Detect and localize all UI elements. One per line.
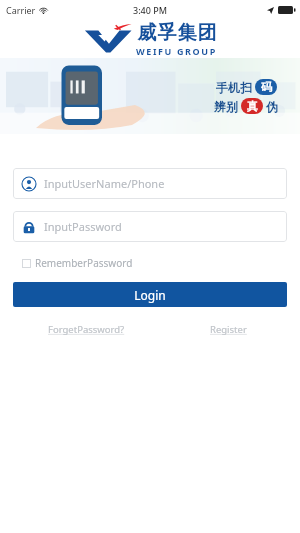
button[interactable]: Register [208,321,249,338]
staticText: 真 [247,99,258,113]
button[interactable]: Login [13,282,287,307]
staticText: WEIFU GROUP [136,45,217,57]
staticText: Login [134,287,166,303]
staticText: Carrier [6,4,36,16]
staticText: 威孚集团 [137,21,217,45]
staticText: 3:40 PM [133,4,167,16]
staticText: 辨别 [214,99,238,114]
staticText: 伪 [266,99,278,114]
staticText: 码 [261,80,272,94]
staticText: 手机扫 [216,80,252,95]
button[interactable]: InputPassword [13,211,287,242]
staticText: InputUserName/Phone [44,176,165,191]
button[interactable]: ForgetPassword? [46,321,127,338]
staticText: InputPassword [44,219,122,234]
button[interactable]: RememberPassword [20,254,135,272]
button[interactable]: InputUserName/Phone [13,168,287,199]
staticText: RememberPassword [35,256,133,270]
